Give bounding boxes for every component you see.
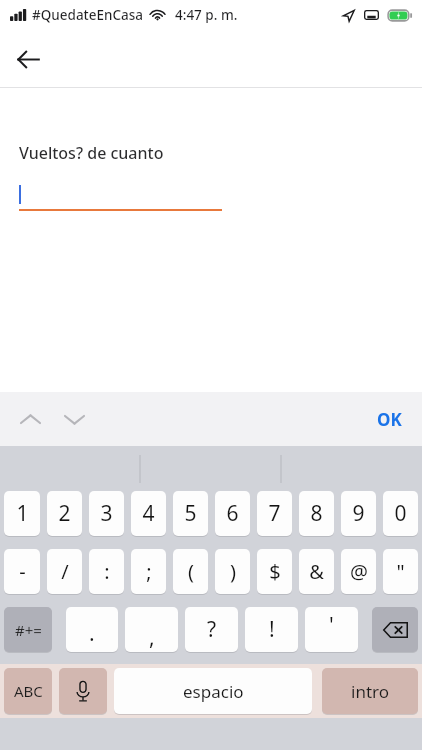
staticText: $ bbox=[269, 558, 281, 585]
button[interactable] bbox=[59, 668, 107, 714]
staticText: #QuedateEnCasa bbox=[32, 6, 144, 24]
button[interactable]: 7 bbox=[257, 491, 292, 536]
staticText: 2 bbox=[58, 499, 71, 528]
staticText: " bbox=[396, 558, 405, 585]
staticText: #+= bbox=[15, 620, 42, 640]
staticText: , bbox=[149, 623, 155, 652]
button[interactable]: $ bbox=[257, 549, 292, 594]
button[interactable]: 0 bbox=[383, 491, 418, 536]
button[interactable]: ! bbox=[245, 607, 298, 652]
button[interactable]: 3 bbox=[89, 491, 124, 536]
button[interactable]: Back bbox=[6, 37, 50, 81]
button[interactable]: @ bbox=[341, 549, 376, 594]
staticText: 1 bbox=[16, 499, 29, 528]
button[interactable]: , bbox=[125, 607, 178, 652]
button[interactable] bbox=[372, 607, 418, 652]
staticText: 4 bbox=[142, 499, 155, 528]
staticText: ; bbox=[146, 558, 152, 585]
staticText: 6 bbox=[226, 499, 239, 528]
button[interactable]: / bbox=[47, 549, 82, 594]
staticText: / bbox=[61, 558, 69, 585]
button[interactable]: ) bbox=[215, 549, 250, 594]
staticText: ABC bbox=[14, 681, 43, 701]
button[interactable]: 4 bbox=[131, 491, 166, 536]
button[interactable]: . bbox=[66, 607, 118, 652]
button[interactable]: ' bbox=[305, 607, 358, 652]
button[interactable]: 9 bbox=[341, 491, 376, 536]
button[interactable]: OK bbox=[367, 400, 412, 439]
button[interactable]: ABC bbox=[4, 668, 52, 714]
button[interactable]: ( bbox=[173, 549, 208, 594]
button[interactable]: " bbox=[383, 549, 418, 594]
button[interactable]: 1 bbox=[4, 491, 40, 536]
staticText: & bbox=[309, 558, 324, 585]
staticText: - bbox=[19, 558, 26, 585]
staticText: Vueltos? de cuanto bbox=[19, 142, 164, 164]
staticText: 3 bbox=[100, 499, 113, 528]
button[interactable]: espacio bbox=[114, 668, 312, 714]
staticText: 8 bbox=[310, 499, 323, 528]
button[interactable]: & bbox=[299, 549, 334, 594]
staticText: 0 bbox=[394, 499, 407, 528]
staticText: . bbox=[89, 619, 95, 648]
button[interactable]: 8 bbox=[299, 491, 334, 536]
button[interactable]: : bbox=[89, 549, 124, 594]
button[interactable]: ; bbox=[131, 549, 166, 594]
staticText: 4:47 p. m. bbox=[175, 6, 238, 24]
staticText: 9 bbox=[352, 499, 365, 528]
staticText: ) bbox=[230, 558, 236, 585]
button[interactable] bbox=[19, 181, 222, 211]
button[interactable]: intro bbox=[322, 668, 418, 714]
other: Backspace bbox=[372, 607, 418, 652]
button[interactable]: 5 bbox=[173, 491, 208, 536]
button[interactable]: Next field bbox=[52, 397, 96, 441]
staticText: ! bbox=[269, 615, 275, 644]
button[interactable]: - bbox=[4, 549, 40, 594]
staticText: ? bbox=[207, 615, 217, 644]
button[interactable]: 6 bbox=[215, 491, 250, 536]
staticText: intro bbox=[351, 680, 389, 703]
staticText: ( bbox=[188, 558, 194, 585]
button[interactable]: 2 bbox=[47, 491, 82, 536]
staticText: espacio bbox=[183, 680, 244, 703]
other: Dictation bbox=[59, 668, 107, 714]
staticText: 5 bbox=[184, 499, 197, 528]
staticText: ' bbox=[329, 611, 334, 640]
staticText: 7 bbox=[268, 499, 281, 528]
staticText: : bbox=[104, 558, 110, 585]
staticText: @ bbox=[350, 558, 368, 585]
staticText: OK bbox=[377, 408, 402, 431]
button[interactable]: Previous field bbox=[8, 397, 52, 441]
button[interactable]: #+= bbox=[4, 607, 52, 652]
button[interactable]: ? bbox=[185, 607, 238, 652]
